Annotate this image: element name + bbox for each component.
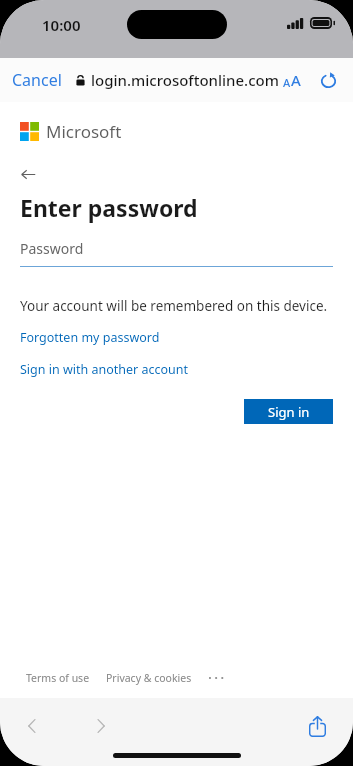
staticText: Terms of use [26, 671, 90, 685]
button[interactable]: More options [206, 670, 228, 686]
button[interactable]: Privacy & cookies [106, 671, 192, 685]
staticText: Password [20, 239, 84, 258]
staticText: Sign in with another account [20, 361, 189, 378]
staticText: 10:00 [42, 15, 81, 35]
button[interactable]: Back [10, 704, 54, 748]
staticText: Sign in [268, 403, 310, 421]
staticText: A [283, 75, 291, 90]
button[interactable]: Forgotten my password [20, 329, 160, 346]
staticText: Your account will be remembered on this … [20, 297, 328, 315]
button[interactable]: Reload page [313, 65, 343, 95]
button[interactable]: Forward [79, 704, 123, 748]
staticText: login.microsoftonline.com [91, 70, 279, 90]
staticText: Cancel [12, 69, 62, 91]
button[interactable]: Cancel [0, 58, 74, 102]
staticText: Privacy & cookies [106, 671, 192, 685]
button[interactable]: Terms of use [26, 671, 90, 685]
button[interactable]: Share [295, 704, 339, 748]
button[interactable]: Sign in [244, 399, 333, 424]
button[interactable]: Text size options [277, 65, 307, 95]
staticText: A [291, 70, 301, 90]
staticText: Forgotten my password [20, 329, 160, 346]
button[interactable]: Password [20, 239, 333, 267]
staticText: Enter password [20, 192, 198, 223]
button[interactable]: Sign in with another account [20, 361, 189, 378]
button[interactable]: Back [14, 160, 42, 188]
staticText: Microsoft [46, 120, 122, 143]
